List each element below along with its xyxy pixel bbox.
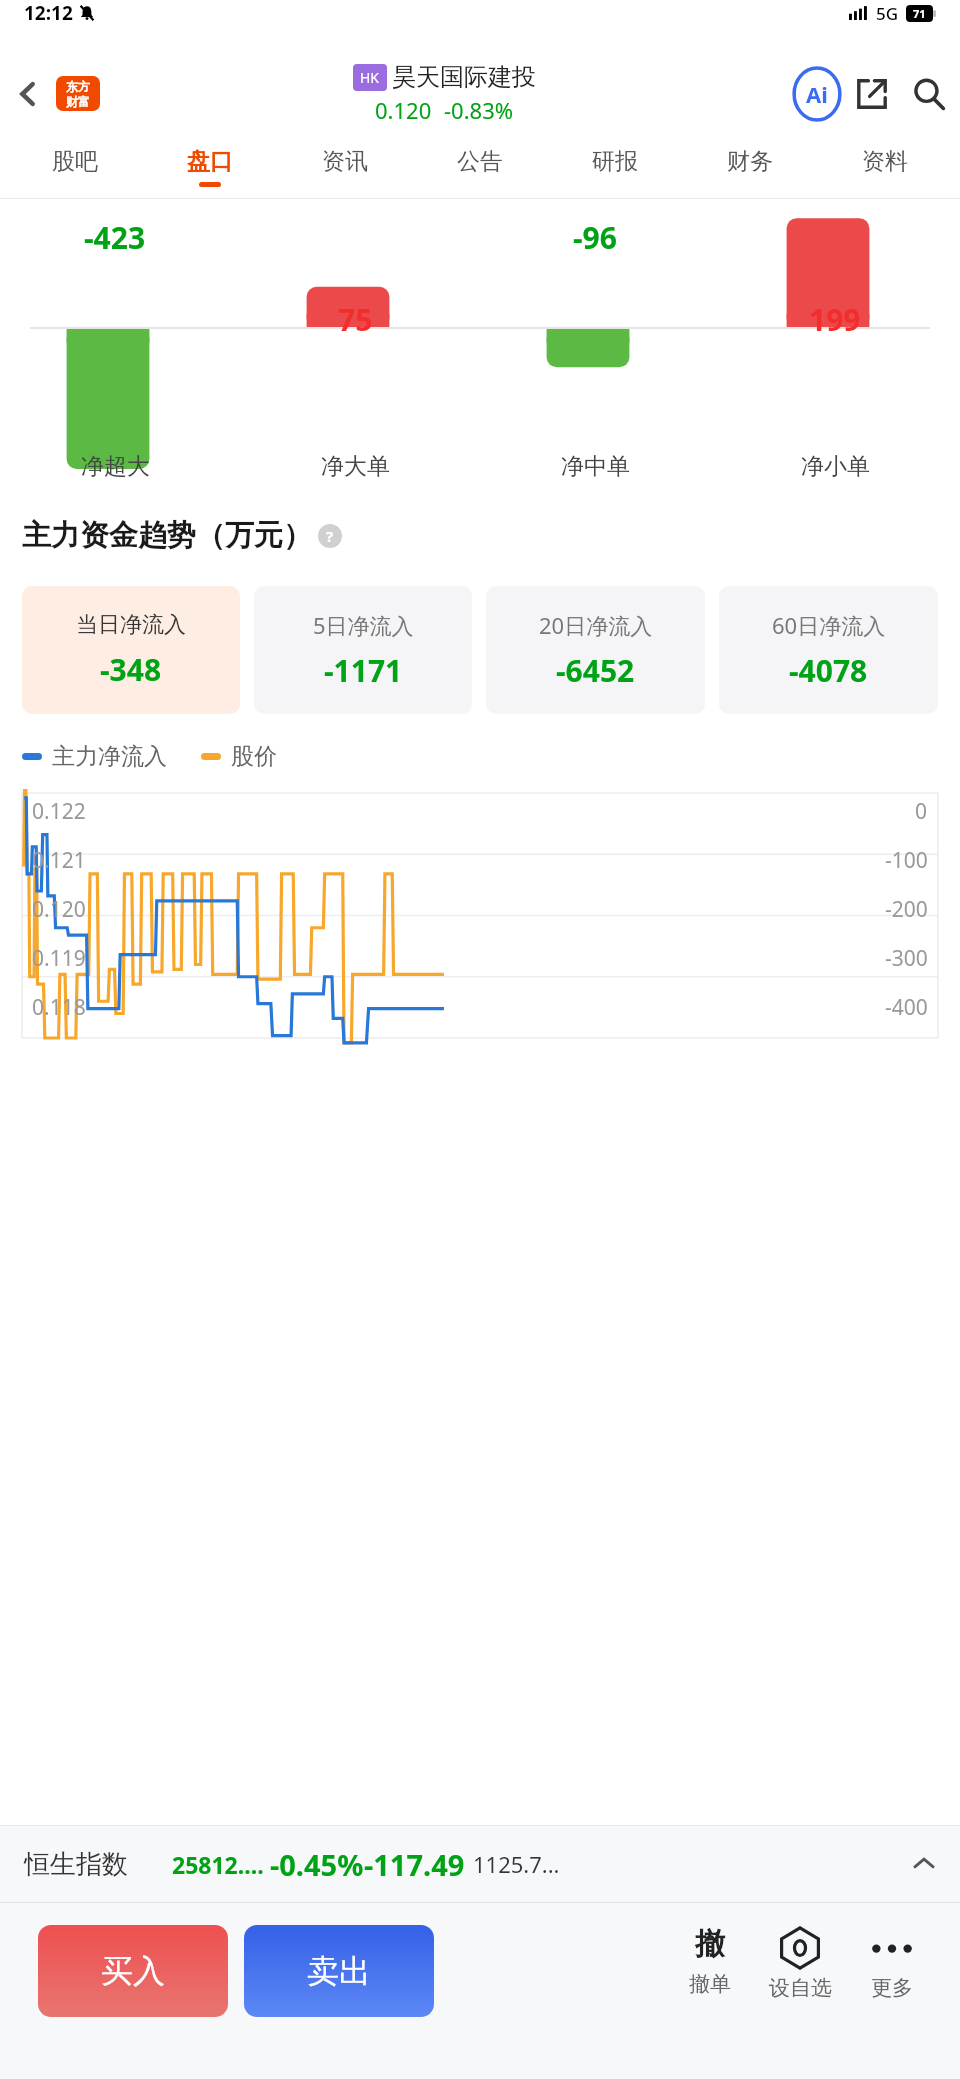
staticText: -400 bbox=[885, 993, 928, 1022]
button[interactable]: 资讯 bbox=[277, 136, 412, 198]
button[interactable]: 卖出 bbox=[244, 1925, 434, 2017]
button[interactable]: 盘口 bbox=[142, 136, 277, 198]
staticText: 199 bbox=[809, 299, 861, 340]
staticText: 20日净流入 bbox=[539, 610, 653, 640]
staticText: 主力资金趋势（万元） bbox=[22, 517, 312, 554]
staticText: -300 bbox=[885, 944, 928, 973]
button[interactable]: 撤 bbox=[668, 1925, 752, 1997]
staticText: 撤单 bbox=[689, 1971, 731, 1997]
staticText: 75 bbox=[338, 299, 373, 340]
button[interactable]: 研报 bbox=[547, 136, 682, 198]
staticText: 买入 bbox=[101, 1951, 165, 1991]
other: Expand bbox=[912, 1852, 936, 1876]
staticText: 研报 bbox=[592, 147, 638, 176]
staticText: 71 bbox=[913, 6, 926, 21]
button[interactable]: 20日净流入 bbox=[486, 586, 705, 714]
staticText: 0.121 bbox=[32, 846, 86, 875]
staticText: -0.83% bbox=[444, 95, 514, 125]
staticText: -0.45% bbox=[270, 1845, 364, 1884]
staticText: 昊天国际建投 bbox=[392, 62, 536, 92]
button[interactable]: 资料 bbox=[817, 136, 952, 198]
staticText: 净小单 bbox=[801, 452, 870, 481]
staticText: 净中单 bbox=[561, 452, 630, 481]
staticText: 财务 bbox=[727, 147, 773, 176]
staticText: 12:12 bbox=[24, 0, 73, 26]
button[interactable]: HK bbox=[100, 62, 788, 125]
staticText: 资讯 bbox=[322, 147, 368, 176]
staticText: -100 bbox=[885, 846, 928, 875]
staticText: Ai bbox=[806, 79, 828, 109]
staticText: 股价 bbox=[231, 742, 277, 771]
button[interactable]: 设自选 bbox=[752, 1925, 848, 2001]
staticText: -423 bbox=[84, 217, 146, 258]
staticText: 公告 bbox=[457, 147, 503, 176]
button[interactable]: 股吧 bbox=[8, 136, 142, 198]
staticText: 0 bbox=[915, 797, 928, 826]
staticText: 股吧 bbox=[52, 147, 98, 176]
button[interactable]: AI bbox=[788, 51, 846, 136]
staticText: 5日净流入 bbox=[313, 610, 414, 640]
staticText: -200 bbox=[885, 895, 928, 924]
button[interactable]: 5日净流入 bbox=[254, 586, 472, 714]
staticText: -6452 bbox=[556, 650, 635, 691]
staticText: 设自选 bbox=[769, 1975, 832, 2001]
staticText: 5G bbox=[876, 2, 899, 25]
button[interactable]: East Money bbox=[56, 76, 100, 111]
staticText: 卖出 bbox=[307, 1951, 371, 1991]
staticText: 盘口 bbox=[187, 147, 233, 176]
button[interactable]: 当日净流入 bbox=[22, 586, 240, 714]
button[interactable]: Help bbox=[318, 524, 342, 548]
staticText: 0.122 bbox=[32, 797, 86, 826]
button[interactable]: 60日净流入 bbox=[719, 586, 938, 714]
button[interactable]: 更多 bbox=[848, 1925, 936, 2001]
staticText: 当日净流入 bbox=[76, 611, 186, 639]
button[interactable]: Back bbox=[0, 51, 56, 136]
staticText: 净超大 bbox=[81, 452, 150, 481]
button[interactable]: Search bbox=[898, 51, 960, 136]
button[interactable]: 恒生指数 bbox=[0, 1825, 960, 1903]
staticText: 1125.7... bbox=[473, 1849, 560, 1879]
staticText: 资料 bbox=[862, 147, 908, 176]
staticText: 东方 bbox=[66, 79, 90, 94]
staticText: 撤 bbox=[695, 1925, 725, 1963]
staticText: -4078 bbox=[789, 650, 868, 691]
staticText: 0.118 bbox=[32, 993, 86, 1022]
button[interactable]: 财务 bbox=[682, 136, 817, 198]
button[interactable]: 公告 bbox=[412, 136, 547, 198]
staticText: -348 bbox=[100, 649, 162, 690]
staticText: 0.120 bbox=[375, 95, 432, 125]
staticText: 财富 bbox=[66, 94, 90, 109]
staticText: 更多 bbox=[871, 1975, 913, 2001]
staticText: 恒生指数 bbox=[24, 1848, 128, 1881]
staticText: ? bbox=[326, 526, 334, 546]
staticText: 0.120 bbox=[32, 895, 86, 924]
staticText: 主力净流入 bbox=[52, 742, 167, 771]
button[interactable]: 买入 bbox=[38, 1925, 228, 2017]
staticText: 0.119 bbox=[32, 944, 86, 973]
staticText: 净大单 bbox=[321, 452, 390, 481]
staticText: 25812.... bbox=[172, 1849, 264, 1880]
staticText: -117.49 bbox=[364, 1845, 465, 1884]
staticText: HK bbox=[360, 68, 380, 87]
staticText: 60日净流入 bbox=[772, 610, 886, 640]
staticText: -1171 bbox=[324, 650, 403, 691]
button[interactable]: Share bbox=[846, 51, 898, 136]
staticText: -96 bbox=[573, 217, 617, 258]
